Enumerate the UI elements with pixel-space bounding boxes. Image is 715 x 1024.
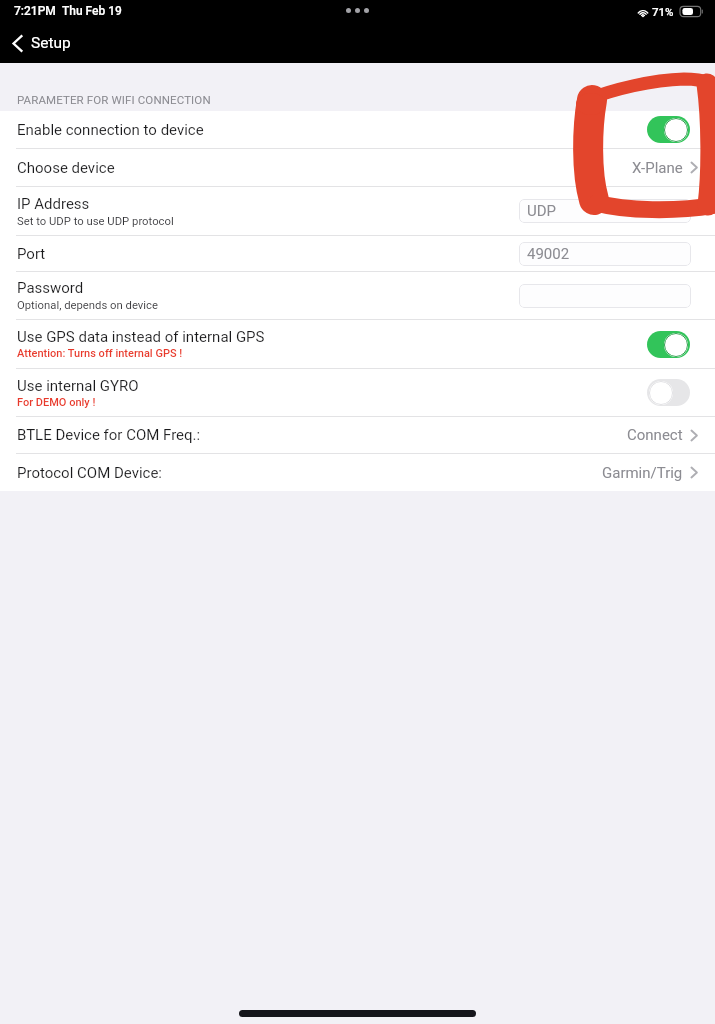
button[interactable]: Enable connection to device (0, 111, 715, 148)
button[interactable]: BTLE Device for COM Freq.: (0, 417, 715, 453)
button[interactable]: Protocol COM Device: (0, 454, 715, 491)
staticText: 71% (652, 5, 674, 18)
staticText: Set to UDP to use UDP protocol (17, 215, 174, 228)
button[interactable]: Toggle on (647, 331, 690, 358)
staticText: Garmin/Trig (602, 464, 683, 482)
button[interactable]: Port (0, 236, 715, 271)
staticText: X-Plane (632, 159, 683, 177)
staticText: Optional, depends on device (17, 299, 158, 312)
button[interactable]: Password field (519, 284, 691, 308)
staticText: IP Address (17, 195, 90, 213)
staticText: 7:21PM (14, 4, 56, 18)
button[interactable]: Toggle on (647, 116, 690, 143)
button[interactable]: IP Address (0, 187, 715, 235)
button[interactable]: Choose device (0, 149, 715, 186)
staticText: Use internal GYRO (17, 377, 139, 395)
staticText: Setup (31, 34, 71, 52)
staticText: Protocol COM Device: (17, 464, 162, 482)
staticText: 49002 (527, 245, 570, 263)
staticText: Password (17, 279, 84, 297)
button[interactable]: Port field (519, 242, 691, 266)
button[interactable]: Password (0, 272, 715, 319)
staticText: Choose device (17, 159, 115, 177)
staticText: Use GPS data instead of internal GPS (17, 328, 265, 346)
staticText: BTLE Device for COM Freq.: (17, 426, 201, 444)
button[interactable]: IP Address field (519, 199, 691, 223)
staticText: Attention: Turns off internal GPS ! (17, 347, 183, 360)
button[interactable]: Back to Setup (0, 30, 81, 56)
staticText: Thu Feb 19 (62, 4, 122, 18)
button[interactable]: Use internal GYRO (0, 369, 715, 416)
staticText: For DEMO only ! (17, 396, 96, 409)
staticText: UDP (527, 202, 557, 220)
staticText: PARAMETER FOR WIFI CONNECTION (17, 93, 211, 106)
staticText: Enable connection to device (17, 121, 204, 139)
button[interactable]: Use GPS data instead of internal GPS (0, 320, 715, 368)
button[interactable]: Toggle off (647, 379, 690, 406)
staticText: Port (17, 245, 46, 263)
staticText: Connect (627, 426, 683, 444)
